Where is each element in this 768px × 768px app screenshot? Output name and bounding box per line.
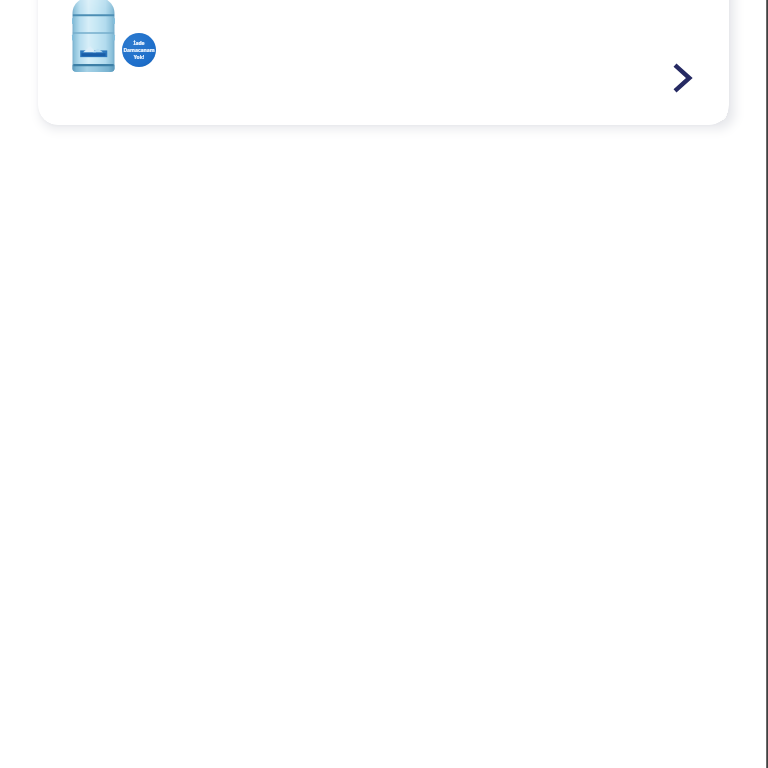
button[interactable]: İade Damacanam Yok! [38,0,729,125]
button[interactable]: İade Damacanam Yok! [122,33,156,67]
button[interactable]: Details [657,52,709,104]
staticText: İade Damacanam Yok! [123,40,155,61]
